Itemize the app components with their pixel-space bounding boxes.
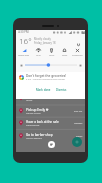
- staticText: Torch: [49, 54, 55, 57]
- staticText: Dismiss: [56, 88, 67, 92]
- button[interactable]: Torch: [45, 48, 58, 57]
- staticText: Wi-Fi: [36, 54, 41, 57]
- staticText: Lincoln Barbers: [26, 137, 43, 140]
- button[interactable]: Take a look at this: [18, 92, 83, 104]
- staticText: Have a look at the sale: [26, 120, 59, 124]
- button[interactable]: Home: [48, 141, 55, 148]
- staticText: Mostly cloudy: [34, 37, 51, 41]
- staticText: 16°: [19, 35, 32, 46]
- button[interactable]: Add reminder: [72, 137, 82, 147]
- staticText: Friday, January 18: [34, 41, 56, 45]
- staticText: Tuesday: [74, 122, 83, 125]
- button[interactable]: Pick up Emily ♥: [18, 105, 83, 117]
- button[interactable]: Screenshot: [71, 48, 84, 57]
- button[interactable]: Auto brightness: [79, 64, 82, 67]
- staticText: Home: [26, 99, 33, 102]
- staticText: 6:00 PM: [74, 110, 83, 113]
- staticText: Supermarket: [26, 124, 40, 127]
- staticText: Go to barber shop: [26, 133, 53, 137]
- staticText: Don't forget the groceries!: [26, 74, 67, 78]
- button[interactable]: Dismiss: [55, 88, 68, 92]
- staticText: Pick up Emily ♥: [26, 108, 49, 112]
- button[interactable]: Mobile data: [17, 48, 31, 57]
- staticText: Mobile data: [18, 54, 30, 57]
- staticText: Mark done: [36, 88, 51, 92]
- staticText: 4:30 PM: [18, 30, 29, 34]
- button[interactable]: Don't forget the groceries!: [16, 72, 85, 99]
- button[interactable]: Have a look at the sale: [18, 117, 83, 129]
- button[interactable]: Silent: [58, 48, 71, 57]
- staticText: Silent: [62, 54, 68, 57]
- button[interactable]: Wi-Fi: [31, 48, 45, 57]
- staticText: Friday: [76, 135, 83, 138]
- button[interactable]: Mark done: [35, 88, 52, 92]
- staticText: Screenshot: [72, 54, 83, 57]
- staticText: Central school: [26, 112, 41, 115]
- button[interactable]: Go to barber shop: [18, 130, 83, 142]
- staticText: 5 PM · Walmart neighborhood market: [26, 78, 65, 81]
- button[interactable]: Edit: [76, 42, 81, 47]
